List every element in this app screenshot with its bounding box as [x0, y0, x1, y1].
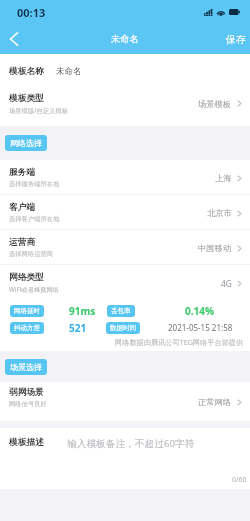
staticText: 客户端 [9, 202, 36, 213]
staticText: 正常网络 [198, 397, 232, 407]
button[interactable]: 网络类型 [0, 265, 250, 300]
staticText: 丢包率 [111, 307, 131, 315]
staticText: WiFi或者蜂窝网络 [9, 285, 60, 294]
staticText: 模板名称 [9, 66, 44, 77]
staticText: 运营商 [9, 237, 36, 248]
staticText: 网络延时 [14, 307, 40, 315]
staticText: 0/60 [232, 475, 247, 485]
button[interactable]: 模板类型 [0, 89, 250, 126]
staticText: 北京市 [207, 208, 232, 218]
staticText: 选择客户端所在地 [9, 215, 60, 223]
button[interactable]: 弱网场景 [0, 382, 250, 421]
staticText: 弱网场景 [9, 387, 44, 398]
button[interactable]: 服务端 [0, 160, 250, 195]
staticText: 场景模版/自定义模板 [9, 106, 69, 115]
staticText: 抖动方差 [14, 324, 40, 332]
staticText: 模板描述 [9, 437, 44, 448]
button[interactable]: Back [0, 25, 28, 53]
button[interactable]: 模板名称 [0, 54, 250, 89]
staticText: 未命名 [111, 33, 139, 45]
staticText: 521 [69, 321, 87, 335]
staticText: 中国移动 [198, 243, 232, 253]
staticText: 输入模板备注，不超过60字符 [67, 437, 195, 450]
staticText: 模板类型 [9, 93, 44, 104]
staticText: 上海 [215, 173, 232, 183]
button[interactable]: 客户端 [0, 195, 250, 230]
staticText: 选择网络运营商 [9, 250, 54, 258]
staticText: 服务端 [9, 167, 36, 178]
staticText: 场景选择 [10, 362, 42, 372]
staticText: 2021-05-15 21:58 [168, 322, 233, 333]
staticText: 网络类型 [9, 272, 44, 283]
staticText: 0.14% [185, 304, 214, 318]
staticText: 4G [221, 278, 232, 289]
button[interactable]: 保存 [222, 29, 250, 50]
button[interactable]: 运营商 [0, 230, 250, 265]
staticText: 00:13 [17, 5, 46, 20]
staticText: 未命名 [56, 66, 82, 77]
staticText: 场景模板 [198, 99, 232, 109]
staticText: 网络信号良好 [9, 400, 47, 408]
staticText: 选择服务端所在地 [9, 180, 60, 188]
staticText: 网络数据由腾讯公司TEG网络平台部提供 [115, 337, 244, 347]
staticText: 保存 [226, 33, 246, 46]
staticText: 网络选择 [10, 138, 42, 148]
staticText: 数据时间 [110, 324, 136, 332]
staticText: 91ms [69, 304, 96, 318]
